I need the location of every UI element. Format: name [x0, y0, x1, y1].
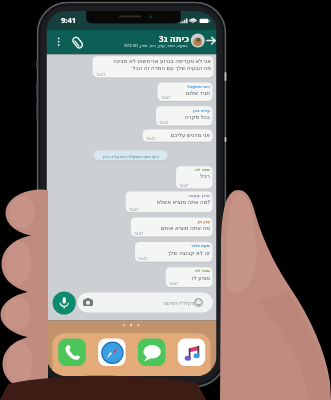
staticText: מה הבעיה שלך עם המרה זה הכל	[51, 64, 211, 72]
staticText: מה אתה מוציא אותם	[50, 224, 210, 232]
staticText: הקלד/י הודעה	[35, 299, 195, 306]
staticText: 12:47	[129, 207, 139, 212]
staticText: 12:47	[161, 95, 171, 100]
staticText: עדן חן	[50, 219, 210, 225]
staticText: כיתה ג3	[29, 33, 189, 45]
staticText: מה אתה מוציא אשלח?	[50, 198, 210, 206]
staticText: אני לא מעדיפה בגרוע אני פשוט לא מבינה	[51, 57, 211, 65]
staticText: 12:47	[159, 120, 169, 125]
staticText: בכל מקרה	[50, 113, 210, 121]
staticText: נופר לוי	[50, 167, 210, 173]
staticText: שירן יעקובי	[50, 193, 210, 199]
staticText: 12:47	[134, 231, 144, 236]
staticText: 12:47	[169, 281, 179, 286]
staticText: נועה גלזר	[50, 243, 210, 249]
staticText: רוני יחזקאל	[50, 84, 210, 90]
staticText: 12:47	[179, 183, 189, 188]
staticText: זה לא קבוצה שלך	[50, 249, 210, 257]
staticText: נועה, נופר, עדן, רוני, שירן, 50 972+	[28, 42, 188, 48]
staticText: 12:47	[96, 72, 106, 77]
staticText: מציע לו	[50, 274, 210, 282]
staticText: 12:47	[138, 256, 148, 261]
staticText: רועי יוסף הוסיף/ה את עדיה כהן	[94, 153, 168, 159]
staticText: 9:41	[61, 15, 77, 25]
staticText: 12:47	[146, 136, 156, 141]
staticText: אני מרגיש עליכם	[50, 131, 210, 139]
staticText: רגיל	[50, 173, 210, 180]
staticText: עדיה כהן	[50, 108, 210, 114]
staticText: תגיד שלום	[50, 89, 210, 97]
staticText: נופר לוי	[50, 268, 210, 274]
